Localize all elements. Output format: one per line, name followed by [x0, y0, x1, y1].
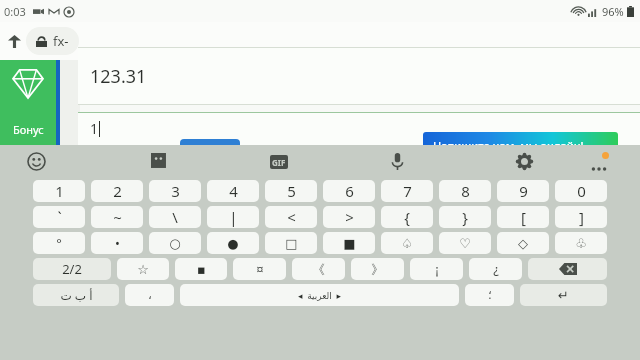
- button[interactable]: ،: [125, 284, 174, 306]
- button[interactable]: 0: [555, 180, 607, 202]
- button[interactable]: ↵: [520, 284, 607, 306]
- staticText: 1: [90, 119, 99, 138]
- button[interactable]: `: [33, 206, 85, 228]
- staticText: 7: [403, 181, 412, 201]
- button[interactable]: sticker: [145, 145, 173, 178]
- staticText: □: [285, 236, 298, 251]
- button[interactable]: [180, 139, 240, 153]
- button[interactable]: |: [207, 206, 259, 228]
- button[interactable]: 5: [265, 180, 317, 202]
- button[interactable]: ♡: [439, 232, 491, 254]
- button[interactable]: 2: [91, 180, 143, 202]
- button[interactable]: more: [585, 145, 613, 178]
- staticText: |: [229, 207, 238, 227]
- staticText: ♧: [575, 236, 587, 251]
- button[interactable]: {: [381, 206, 433, 228]
- staticText: ¤: [256, 260, 264, 278]
- staticText: ☆: [137, 262, 149, 277]
- button[interactable]: Напишите нам, мы онлайн!: [423, 132, 618, 158]
- button[interactable]: >: [323, 206, 375, 228]
- button[interactable]: emoji: [22, 145, 50, 178]
- button[interactable]: ◇: [497, 232, 549, 254]
- button[interactable]: 7: [381, 180, 433, 202]
- staticText: 1: [55, 181, 64, 201]
- button[interactable]: 1: [78, 112, 640, 145]
- button[interactable]: ؛: [465, 284, 514, 306]
- button[interactable]: 1: [33, 180, 85, 202]
- staticText: 5: [287, 181, 296, 201]
- button[interactable]: 2/2: [33, 258, 111, 280]
- button[interactable]: }: [439, 206, 491, 228]
- staticText: ]: [579, 207, 584, 227]
- button[interactable]: أ ب ت: [33, 284, 119, 306]
- staticText: GIF: [272, 157, 286, 168]
- button[interactable]: fx-: [36, 27, 69, 55]
- staticText: 8: [461, 181, 470, 201]
- staticText: }: [462, 207, 468, 227]
- staticText: 《: [312, 261, 325, 277]
- button[interactable]: ☆: [117, 258, 169, 280]
- button[interactable]: ¡: [410, 258, 463, 280]
- button[interactable]: mic: [383, 145, 411, 178]
- button[interactable]: settings: [510, 145, 538, 178]
- button[interactable]: ●: [207, 232, 259, 254]
- staticText: {: [404, 207, 410, 227]
- button[interactable]: ■: [323, 232, 375, 254]
- staticText: <: [287, 207, 296, 227]
- button[interactable]: 3: [149, 180, 201, 202]
- staticText: ♤: [401, 236, 413, 251]
- button[interactable]: 6: [323, 180, 375, 202]
- staticText: ◇: [518, 236, 528, 251]
- staticText: °: [56, 234, 62, 252]
- button[interactable]: ○: [149, 232, 201, 254]
- button[interactable]: Backspace: [528, 258, 607, 280]
- button[interactable]: gif: [265, 145, 293, 178]
- button[interactable]: Share: [2, 29, 26, 53]
- staticText: ◂ العربية ▸: [298, 289, 341, 301]
- button[interactable]: •: [91, 232, 143, 254]
- staticText: ¡: [435, 260, 439, 278]
- button[interactable]: 4: [207, 180, 259, 202]
- button[interactable]: ~: [91, 206, 143, 228]
- staticText: أ ب ت: [60, 287, 93, 303]
- button[interactable]: 8: [439, 180, 491, 202]
- staticText: 3: [171, 181, 180, 201]
- staticText: Напишите нам, мы онлайн!: [433, 138, 584, 153]
- button[interactable]: ¤: [233, 258, 286, 280]
- button[interactable]: ▪: [175, 258, 227, 280]
- button[interactable]: ◂ العربية ▸: [180, 284, 459, 306]
- staticText: >: [345, 207, 354, 227]
- button[interactable]: ♧: [555, 232, 607, 254]
- staticText: ،: [148, 288, 152, 302]
- staticText: •: [115, 234, 120, 252]
- button[interactable]: ♤: [381, 232, 433, 254]
- staticText: `: [57, 207, 62, 227]
- button[interactable]: ]: [555, 206, 607, 228]
- button[interactable]: 123.31: [78, 47, 640, 105]
- staticText: 2/2: [62, 260, 82, 278]
- button[interactable]: 9: [497, 180, 549, 202]
- button[interactable]: <: [265, 206, 317, 228]
- button[interactable]: □: [265, 232, 317, 254]
- button[interactable]: [: [497, 206, 549, 228]
- staticText: ■: [343, 236, 356, 251]
- staticText: \: [172, 207, 178, 227]
- staticText: ○: [169, 236, 181, 251]
- staticText: fx-: [53, 32, 69, 50]
- button[interactable]: ¿: [469, 258, 522, 280]
- staticText: 0:03: [4, 4, 26, 19]
- staticText: ▪: [197, 262, 206, 277]
- staticText: ↵: [558, 288, 569, 303]
- staticText: ¿: [493, 260, 499, 278]
- button[interactable]: 》: [351, 258, 404, 280]
- staticText: 6: [345, 181, 354, 201]
- staticText: 96%: [602, 4, 624, 19]
- staticText: 0: [577, 181, 586, 201]
- button[interactable]: 《: [292, 258, 345, 280]
- button[interactable]: \: [149, 206, 201, 228]
- button[interactable]: °: [33, 232, 85, 254]
- staticText: ~: [113, 207, 122, 227]
- staticText: ●: [227, 236, 239, 251]
- staticText: Бонус: [13, 122, 44, 137]
- staticText: 4: [229, 181, 238, 201]
